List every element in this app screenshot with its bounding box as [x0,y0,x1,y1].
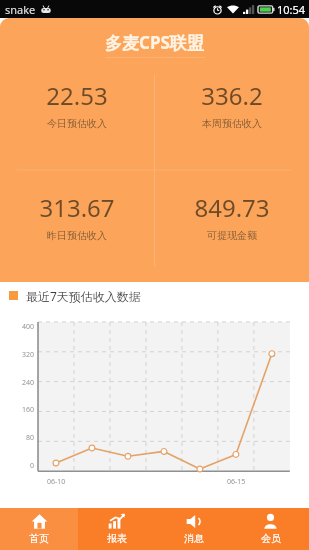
staticText: 400 [21,322,34,332]
staticText: 本周预估收入 [202,117,262,130]
staticText: 160 [21,405,34,415]
staticText: 首页 [29,532,49,545]
staticText: 多麦CPS联盟 [105,31,204,54]
button[interactable]: Home [0,508,78,550]
button[interactable]: 849.73 [154,170,309,282]
staticText: snake [5,2,36,17]
staticText: 336.2 [201,79,263,112]
staticText: 最近7天预估收入数据 [26,288,141,304]
staticText: 10:54 [277,2,306,17]
staticText: 消息 [184,532,204,545]
button[interactable]: 313.67 [0,170,154,282]
staticText: 22.53 [46,79,108,112]
staticText: 可提现金额 [207,229,257,242]
staticText: 80 [25,433,34,443]
staticText: 06-15 [227,477,246,487]
staticText: 313.67 [39,191,115,224]
button[interactable]: Reports [78,508,155,550]
staticText: 849.73 [194,191,270,224]
button[interactable]: Member [232,508,309,550]
staticText: 06-10 [47,477,66,487]
staticText: 昨日预估收入 [47,229,107,242]
button[interactable]: Messages [155,508,232,550]
staticText: 320 [21,350,34,360]
staticText: 报表 [107,532,127,545]
button[interactable]: 336.2 [154,58,309,170]
staticText: 会员 [261,532,281,545]
button[interactable]: 22.53 [0,58,154,170]
staticText: 0 [29,461,34,471]
staticText: 今日预估收入 [47,117,107,130]
staticText: 240 [21,378,34,388]
